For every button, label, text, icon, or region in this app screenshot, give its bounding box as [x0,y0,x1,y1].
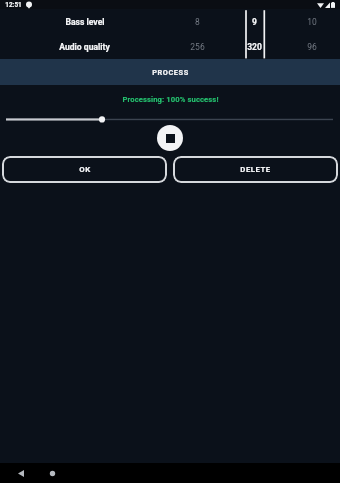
staticText: Audio quality [59,42,110,52]
button[interactable]: 256 [169,42,226,52]
button[interactable]: 9 [226,17,283,27]
button[interactable]: DELETE [173,156,338,183]
staticText: 12:51 [5,1,22,9]
staticText: 9 [252,17,257,27]
staticText: 96 [307,42,317,52]
button[interactable]: Back [14,466,28,480]
staticText: PROCESS [152,68,189,77]
button[interactable]: Home [45,466,59,480]
staticText: Bass level [65,17,105,27]
button[interactable]: 320 [226,42,283,52]
staticText: Processing: 100% success! [122,95,219,104]
staticText: 10 [307,17,317,27]
staticText: OK [79,165,91,174]
button[interactable]: 10 [283,17,340,27]
button[interactable]: 96 [283,42,340,52]
staticText: DELETE [240,165,271,174]
staticText: 8 [195,17,200,27]
button[interactable]: OK [2,156,167,183]
button[interactable]: PROCESS [0,59,340,85]
button[interactable] [0,110,340,121]
staticText: 256 [190,42,205,52]
button[interactable]: 8 [169,17,226,27]
button[interactable]: Stop [157,125,183,151]
staticText: 320 [247,42,262,52]
